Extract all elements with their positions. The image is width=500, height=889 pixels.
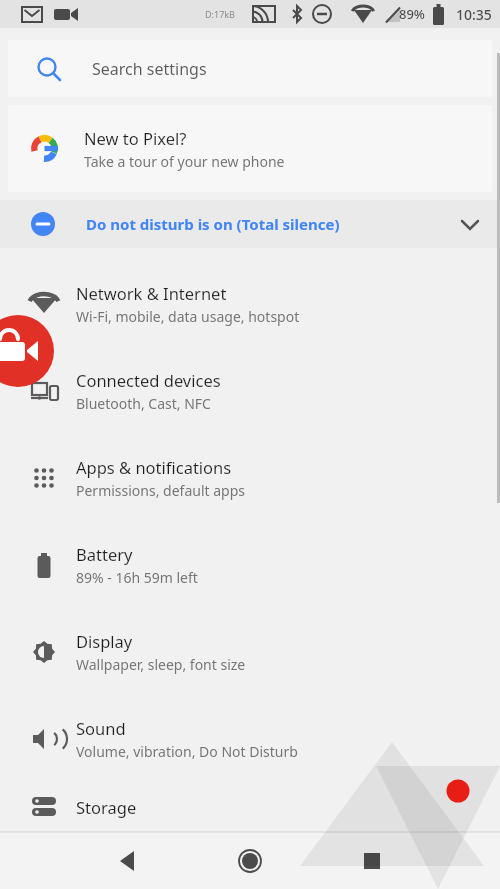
staticText: Do not disturb is on (Total silence)	[86, 214, 340, 234]
button[interactable]: Home	[228, 839, 272, 883]
staticText: 10:35	[456, 5, 492, 24]
staticText: Wi-Fi, mobile, data usage, hotspot	[76, 307, 300, 326]
button[interactable]: Apps & notifications	[0, 434, 500, 521]
button[interactable]: Battery	[0, 521, 500, 608]
other: Screen recorder	[0, 0, 500, 889]
button[interactable]: Display	[0, 608, 500, 695]
staticText: Search settings	[92, 58, 207, 80]
staticText: New to Pixel?	[84, 127, 187, 149]
staticText: Network & Internet	[76, 282, 227, 304]
staticText: Connected devices	[76, 369, 221, 391]
staticText: Bluetooth, Cast, NFC	[76, 394, 211, 413]
staticText: Sound	[76, 717, 126, 739]
staticText: Volume, vibration, Do Not Disturb	[76, 742, 298, 761]
button[interactable]: Search settings	[8, 40, 492, 97]
button[interactable]: Connected devices	[0, 347, 500, 434]
button[interactable]: Recent apps	[350, 839, 394, 883]
staticText: Permissions, default apps	[76, 481, 246, 500]
staticText: 89% - 16h 59m left	[76, 568, 198, 587]
staticText: D:17kB	[205, 8, 235, 20]
button[interactable]: New to Pixel?	[8, 105, 492, 192]
staticText: Battery	[76, 543, 133, 565]
staticText: Storage	[76, 796, 137, 818]
button[interactable]: Network & Internet	[0, 260, 500, 347]
button[interactable]: Back	[106, 839, 150, 883]
staticText: Display	[76, 630, 133, 652]
button[interactable]: Do not disturb is on (Total silence)	[0, 200, 500, 248]
button[interactable]: Sound	[0, 695, 500, 782]
staticText: Take a tour of your new phone	[84, 152, 285, 171]
staticText: Wallpaper, sleep, font size	[76, 655, 246, 674]
staticText: Apps & notifications	[76, 456, 232, 478]
button[interactable]: Storage	[0, 782, 500, 832]
staticText: 89%	[399, 5, 425, 23]
